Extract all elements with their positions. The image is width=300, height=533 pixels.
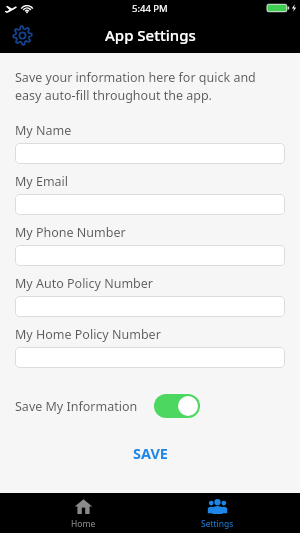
button[interactable]: My Name — [15, 143, 285, 164]
button[interactable]: SAVE — [15, 440, 285, 466]
staticText: My Name — [15, 122, 72, 139]
button[interactable]: My Home Policy Number — [15, 347, 285, 368]
staticText: My Email — [15, 173, 69, 190]
button[interactable]: My Auto Policy Number — [15, 296, 285, 317]
staticText: My Home Policy Number — [15, 326, 161, 343]
staticText: Settings — [201, 518, 234, 530]
staticText: SAVE — [133, 443, 168, 463]
staticText: 5:44 PM — [132, 2, 168, 15]
button[interactable]: Home — [33, 493, 133, 533]
button[interactable]: Settings — [167, 493, 267, 533]
button[interactable]: My Email — [15, 194, 285, 215]
staticText: Save your information here for quick and… — [15, 69, 266, 104]
staticText: Home — [71, 518, 96, 530]
button[interactable]: My Phone Number — [15, 245, 285, 266]
staticText: My Phone Number — [15, 224, 126, 241]
staticText: Save My Information — [15, 398, 138, 415]
staticText: My Auto Policy Number — [15, 275, 154, 292]
staticText: App Settings — [105, 25, 196, 45]
button[interactable]: Settings — [6, 19, 38, 51]
button[interactable]: Save My Information toggle — [154, 394, 200, 418]
